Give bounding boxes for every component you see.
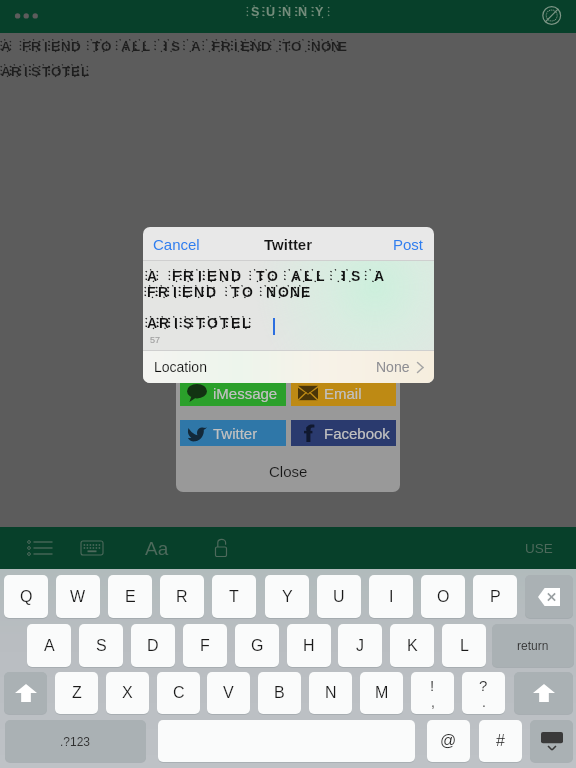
button[interactable]: P [473, 575, 517, 618]
button[interactable]: A [27, 624, 71, 667]
button[interactable]: D [131, 624, 175, 667]
staticText: # [496, 732, 505, 750]
button[interactable]: ? [462, 672, 505, 714]
button[interactable]: Post [383, 229, 434, 260]
staticText: T [92, 39, 101, 54]
button[interactable]: Weather [537, 1, 567, 31]
button[interactable]: N [309, 672, 352, 714]
button[interactable]: I [369, 575, 413, 618]
staticText: L [142, 39, 151, 54]
button[interactable]: K [390, 624, 434, 667]
staticText: E [182, 284, 192, 300]
button[interactable]: G [235, 624, 279, 667]
button[interactable]: # [479, 720, 522, 762]
staticText: R [221, 39, 231, 54]
button[interactable]: M [360, 672, 403, 714]
staticText: D [261, 39, 271, 54]
staticText: R [158, 284, 169, 300]
button[interactable]: B [258, 672, 301, 714]
staticText: E [231, 315, 241, 331]
button[interactable]: T [212, 575, 256, 618]
button[interactable]: Shift [514, 672, 573, 714]
button[interactable]: Aa [139, 535, 175, 561]
staticText: N [325, 684, 337, 702]
button[interactable]: Cancel [143, 229, 210, 260]
staticText: 57 [150, 335, 161, 345]
button[interactable]: More options [6, 2, 46, 30]
staticText: Post [393, 236, 424, 253]
staticText: I [164, 39, 168, 54]
staticText: Close [269, 463, 308, 480]
staticText: N [194, 284, 205, 300]
staticText: F [22, 39, 31, 54]
staticText: U [333, 588, 345, 606]
staticText: . [482, 694, 486, 710]
staticText: D [71, 39, 81, 54]
button[interactable]: USE [518, 533, 560, 563]
button[interactable]: Twitter [180, 420, 286, 446]
button[interactable]: R [160, 575, 204, 618]
button[interactable]: Z [55, 672, 98, 714]
button[interactable]: L [442, 624, 486, 667]
staticText: Twitter [264, 236, 313, 253]
button[interactable]: Keyboard [75, 535, 109, 561]
staticText: Z [72, 684, 82, 702]
button[interactable]: Close [180, 454, 396, 488]
button[interactable]: C [157, 672, 200, 714]
staticText: D [206, 284, 217, 300]
button[interactable]: F [183, 624, 227, 667]
staticText: O [267, 268, 278, 284]
staticText: A [1, 64, 11, 79]
button[interactable]: S [79, 624, 123, 667]
staticText: H [303, 637, 315, 655]
button[interactable]: V [207, 672, 250, 714]
button[interactable]: Facebook [291, 420, 396, 446]
button[interactable]: @ [427, 720, 470, 762]
button[interactable]: Y [265, 575, 309, 618]
staticText: T [220, 315, 229, 331]
staticText: N [331, 39, 338, 54]
button[interactable]: iMessage [180, 380, 286, 406]
button[interactable]: E [108, 575, 152, 618]
staticText: A [147, 268, 158, 284]
staticText: M [375, 684, 389, 702]
staticText: E [125, 588, 136, 606]
staticText: I [44, 39, 48, 54]
staticText: K [407, 637, 418, 655]
staticText: R [31, 39, 41, 54]
staticText: F [200, 637, 210, 655]
staticText: A [291, 268, 302, 284]
button[interactable]: H [287, 624, 331, 667]
staticText: F [172, 268, 181, 284]
button[interactable]: U [317, 575, 361, 618]
button[interactable]: W [56, 575, 100, 618]
staticText: return [517, 639, 549, 652]
button[interactable]: Formatting list [22, 535, 58, 561]
staticText: Facebook [324, 425, 390, 442]
button[interactable]: ! [411, 672, 454, 714]
staticText: USE [525, 541, 553, 556]
button[interactable]: J [338, 624, 382, 667]
staticText: Y [282, 588, 293, 606]
staticText: C [173, 684, 185, 702]
button[interactable]: Lock [207, 535, 235, 561]
button[interactable]: O [421, 575, 465, 618]
staticText: Email [324, 385, 362, 402]
button[interactable]: Q [4, 575, 48, 618]
staticText: E [241, 39, 251, 54]
button[interactable]: Email [291, 380, 396, 406]
button[interactable]: return [492, 624, 574, 667]
staticText: E [71, 64, 81, 79]
staticText: O [51, 64, 61, 79]
button[interactable]: Hide keyboard [530, 720, 573, 762]
button[interactable]: Backspace [525, 575, 573, 618]
button[interactable]: Shift [4, 672, 47, 714]
staticText: I [173, 284, 177, 300]
staticText: R [159, 315, 170, 331]
button[interactable]: .?123 [5, 720, 146, 762]
button[interactable]: X [106, 672, 149, 714]
staticText: N [282, 5, 292, 19]
staticText: B [274, 684, 285, 702]
button[interactable]: Location [143, 351, 434, 383]
